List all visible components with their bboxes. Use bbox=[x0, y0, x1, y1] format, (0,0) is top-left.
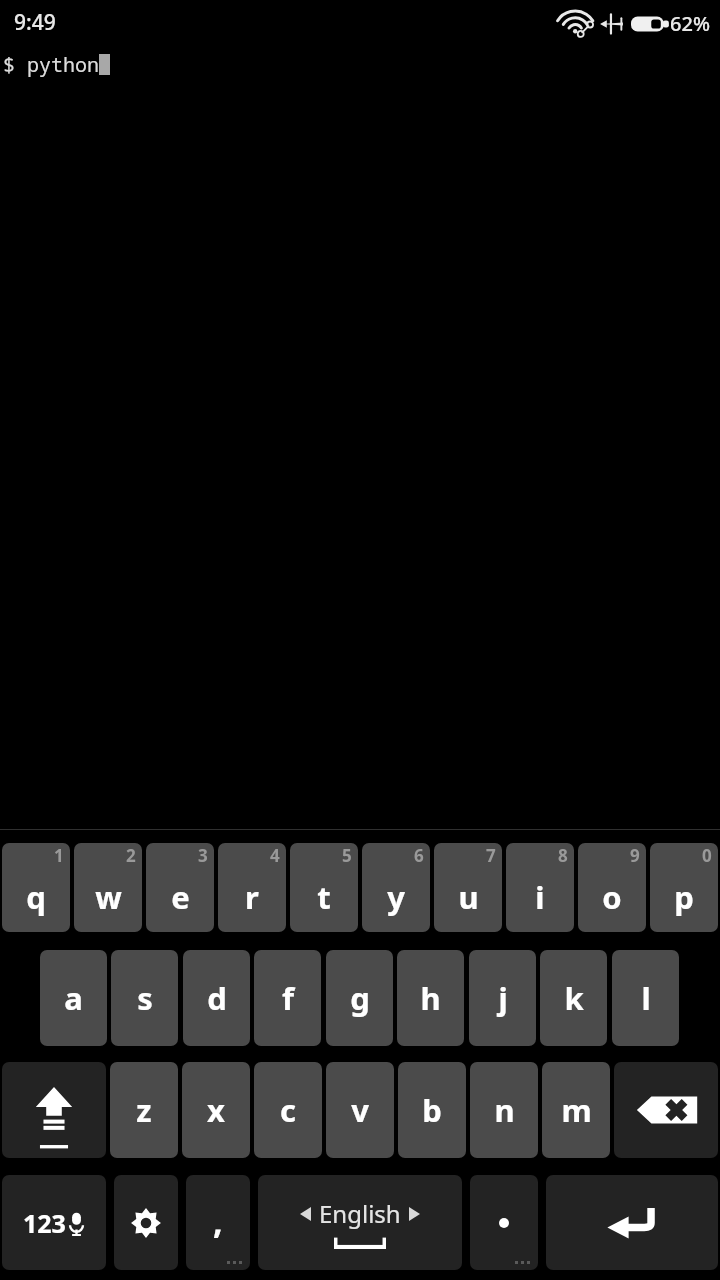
staticText: v bbox=[351, 1089, 369, 1131]
staticText: 123 bbox=[23, 1206, 66, 1240]
button[interactable]: 1 bbox=[2, 843, 70, 932]
button[interactable]: h bbox=[397, 950, 464, 1046]
button[interactable]: 2 bbox=[74, 843, 142, 932]
staticText: n bbox=[494, 1089, 515, 1131]
staticText: 9:49 bbox=[14, 8, 56, 37]
staticText: p bbox=[674, 876, 694, 918]
staticText: d bbox=[207, 977, 227, 1019]
staticText: 62% bbox=[670, 10, 710, 37]
button[interactable]: 9 bbox=[578, 843, 646, 932]
staticText: 2 bbox=[126, 844, 136, 867]
button[interactable]: Symbols and voice input bbox=[2, 1175, 106, 1270]
staticText: k bbox=[564, 977, 584, 1019]
button[interactable]: Space bbox=[258, 1175, 462, 1270]
button[interactable]: x bbox=[182, 1062, 250, 1158]
staticText: m bbox=[561, 1089, 592, 1131]
staticText: , bbox=[213, 1198, 223, 1244]
button[interactable]: Input settings bbox=[114, 1175, 178, 1270]
staticText: o bbox=[602, 876, 622, 918]
staticText: c bbox=[280, 1089, 296, 1131]
staticText: x bbox=[207, 1089, 225, 1131]
staticText: r bbox=[245, 876, 259, 918]
staticText: s bbox=[137, 977, 153, 1019]
staticText: 5 bbox=[342, 844, 352, 867]
button[interactable]: Shift bbox=[2, 1062, 106, 1158]
staticText: 9 bbox=[630, 844, 640, 867]
staticText: a bbox=[64, 977, 83, 1019]
button[interactable]: z bbox=[110, 1062, 178, 1158]
button[interactable]: d bbox=[183, 950, 250, 1046]
button[interactable]: g bbox=[326, 950, 393, 1046]
button[interactable]: a bbox=[40, 950, 107, 1046]
staticText: 8 bbox=[558, 844, 568, 867]
button[interactable]: Backspace bbox=[614, 1062, 718, 1158]
staticText: l bbox=[641, 977, 651, 1019]
staticText: English bbox=[319, 1197, 401, 1230]
staticText: g bbox=[350, 977, 370, 1019]
button[interactable]: 8 bbox=[506, 843, 574, 932]
staticText: t bbox=[317, 876, 331, 918]
button[interactable]: Comma bbox=[186, 1175, 250, 1270]
button[interactable]: 0 bbox=[650, 843, 718, 932]
staticText: f bbox=[282, 977, 294, 1019]
staticText: i bbox=[535, 876, 545, 918]
button[interactable]: 6 bbox=[362, 843, 430, 932]
button[interactable]: c bbox=[254, 1062, 322, 1158]
button[interactable]: v bbox=[326, 1062, 394, 1158]
staticText: b bbox=[422, 1089, 442, 1131]
staticText: j bbox=[498, 977, 508, 1019]
button[interactable]: f bbox=[254, 950, 321, 1046]
button[interactable]: b bbox=[398, 1062, 466, 1158]
staticText: 6 bbox=[414, 844, 424, 867]
staticText: 3 bbox=[198, 844, 208, 867]
button[interactable]: l bbox=[612, 950, 679, 1046]
button[interactable]: s bbox=[111, 950, 178, 1046]
staticText: y bbox=[387, 876, 405, 918]
staticText: w bbox=[95, 876, 122, 918]
button[interactable]: k bbox=[540, 950, 607, 1046]
staticText: 1 bbox=[54, 844, 64, 867]
staticText: 7 bbox=[486, 844, 496, 867]
button[interactable]: j bbox=[469, 950, 536, 1046]
staticText: e bbox=[171, 876, 190, 918]
button[interactable]: 5 bbox=[290, 843, 358, 932]
button[interactable]: Period bbox=[470, 1175, 538, 1270]
staticText: 0 bbox=[702, 844, 712, 867]
button[interactable]: 3 bbox=[146, 843, 214, 932]
staticText: 4 bbox=[270, 844, 280, 867]
staticText: h bbox=[420, 977, 441, 1019]
button[interactable]: n bbox=[470, 1062, 538, 1158]
staticText: q bbox=[26, 876, 46, 918]
staticText: $ python bbox=[3, 51, 99, 78]
button[interactable]: 7 bbox=[434, 843, 502, 932]
staticText: z bbox=[136, 1089, 152, 1131]
button[interactable]: m bbox=[542, 1062, 610, 1158]
button[interactable]: Enter bbox=[546, 1175, 718, 1270]
staticText: u bbox=[458, 876, 479, 918]
button[interactable]: 4 bbox=[218, 843, 286, 932]
